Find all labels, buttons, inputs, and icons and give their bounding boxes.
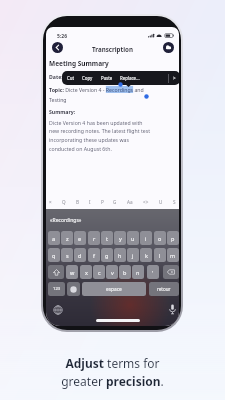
button[interactable] bbox=[67, 282, 80, 296]
button[interactable]: s bbox=[61, 248, 73, 262]
button[interactable] bbox=[163, 265, 179, 279]
button[interactable]: Replace... bbox=[120, 75, 140, 81]
staticText: e bbox=[78, 235, 82, 242]
button[interactable]: x bbox=[80, 265, 92, 279]
button[interactable]: ' bbox=[147, 265, 159, 279]
button[interactable]: p bbox=[167, 231, 179, 245]
staticText: I bbox=[89, 199, 91, 205]
button[interactable]: × bbox=[49, 199, 52, 205]
staticText: > bbox=[173, 75, 176, 81]
staticText: Adjust terms for bbox=[0, 355, 225, 371]
staticText: n bbox=[136, 269, 140, 276]
button[interactable]: Aa bbox=[127, 199, 133, 205]
staticText: s bbox=[66, 252, 69, 259]
button[interactable]: d bbox=[74, 248, 86, 262]
button[interactable]: r bbox=[88, 231, 100, 245]
button[interactable]: Q bbox=[62, 199, 66, 205]
button[interactable]: i bbox=[140, 231, 152, 245]
staticText: greater precision. bbox=[0, 373, 225, 389]
button[interactable]: S bbox=[173, 199, 176, 205]
button[interactable]: e bbox=[74, 231, 86, 245]
staticText: b bbox=[123, 269, 127, 276]
button[interactable]: l bbox=[154, 248, 166, 262]
staticText: Replace... bbox=[120, 75, 140, 81]
button[interactable]: u bbox=[127, 231, 139, 245]
button[interactable]: U bbox=[159, 199, 163, 205]
staticText: d bbox=[78, 252, 82, 259]
button[interactable]: n bbox=[132, 265, 144, 279]
button[interactable]: retour bbox=[149, 282, 179, 296]
button[interactable]: > bbox=[173, 75, 176, 81]
staticText: Summary: bbox=[49, 108, 76, 115]
staticText: Paste bbox=[101, 75, 113, 81]
button[interactable]: P bbox=[101, 199, 104, 205]
button[interactable]: z bbox=[61, 231, 73, 245]
staticText: espace bbox=[106, 286, 122, 293]
button[interactable]: c bbox=[93, 265, 105, 279]
button[interactable]: h bbox=[114, 248, 126, 262]
button[interactable]: Copy bbox=[82, 75, 93, 81]
staticText: Aa bbox=[127, 199, 133, 205]
staticText: w bbox=[70, 269, 75, 276]
staticText: g bbox=[105, 252, 109, 259]
button[interactable]: g bbox=[101, 248, 113, 262]
button[interactable] bbox=[52, 42, 63, 53]
staticText: × bbox=[49, 199, 52, 205]
staticText: a bbox=[52, 235, 56, 242]
staticText: o bbox=[158, 235, 162, 242]
button[interactable]: w bbox=[66, 265, 78, 279]
staticText: Topic: Dicte Version 4 - Recordings and bbox=[49, 86, 144, 93]
staticText: 5:26 bbox=[57, 33, 67, 40]
staticText: G bbox=[113, 199, 117, 205]
button[interactable]: <> bbox=[143, 199, 149, 205]
staticText: y bbox=[119, 235, 122, 242]
button[interactable]: q bbox=[48, 248, 60, 262]
staticText: <> bbox=[143, 199, 149, 205]
staticText: Testing bbox=[49, 96, 67, 103]
staticText: h bbox=[118, 252, 122, 259]
staticText: t bbox=[106, 235, 108, 242]
button[interactable] bbox=[48, 265, 64, 279]
staticText: U bbox=[159, 199, 163, 205]
button[interactable]: Paste bbox=[101, 75, 113, 81]
staticText: f bbox=[93, 252, 95, 259]
staticText: Transcription bbox=[46, 45, 179, 53]
staticText: p bbox=[171, 235, 175, 242]
staticText: r bbox=[93, 235, 96, 242]
button[interactable]: G bbox=[113, 199, 117, 205]
staticText: Meeting Summary bbox=[49, 59, 109, 68]
button[interactable]: a bbox=[48, 231, 60, 245]
button[interactable] bbox=[163, 42, 174, 53]
button[interactable]: t bbox=[101, 231, 113, 245]
button[interactable]: B bbox=[76, 199, 79, 205]
button[interactable]: 123 bbox=[48, 282, 65, 296]
button[interactable]: j bbox=[127, 248, 139, 262]
button[interactable]: m bbox=[167, 248, 179, 262]
button[interactable]: Cut bbox=[67, 75, 75, 81]
staticText: 123 bbox=[53, 286, 61, 292]
button[interactable]: o bbox=[154, 231, 166, 245]
button[interactable]: f bbox=[88, 248, 100, 262]
button[interactable]: b bbox=[119, 265, 131, 279]
staticText: «Recordings» bbox=[50, 217, 82, 224]
staticText: S bbox=[173, 199, 176, 205]
staticText: v bbox=[111, 269, 114, 276]
button[interactable]: v bbox=[106, 265, 118, 279]
staticText: x bbox=[85, 269, 88, 276]
button[interactable]: I bbox=[89, 199, 91, 205]
staticText: Q bbox=[62, 199, 66, 205]
staticText: j bbox=[132, 252, 134, 259]
staticText: m bbox=[170, 252, 176, 259]
staticText: k bbox=[145, 252, 148, 259]
staticText: retour bbox=[157, 286, 171, 292]
staticText: u bbox=[131, 235, 135, 242]
staticText: Copy bbox=[82, 75, 93, 81]
button[interactable]: k bbox=[140, 248, 152, 262]
button[interactable]: y bbox=[114, 231, 126, 245]
staticText: B bbox=[76, 199, 79, 205]
staticText: Dicte Version 4 has been updated with ne… bbox=[49, 119, 151, 153]
staticText: Cut bbox=[67, 75, 75, 81]
button[interactable]: espace bbox=[82, 282, 146, 296]
staticText: c bbox=[98, 269, 101, 276]
staticText: Date: bbox=[49, 73, 63, 80]
